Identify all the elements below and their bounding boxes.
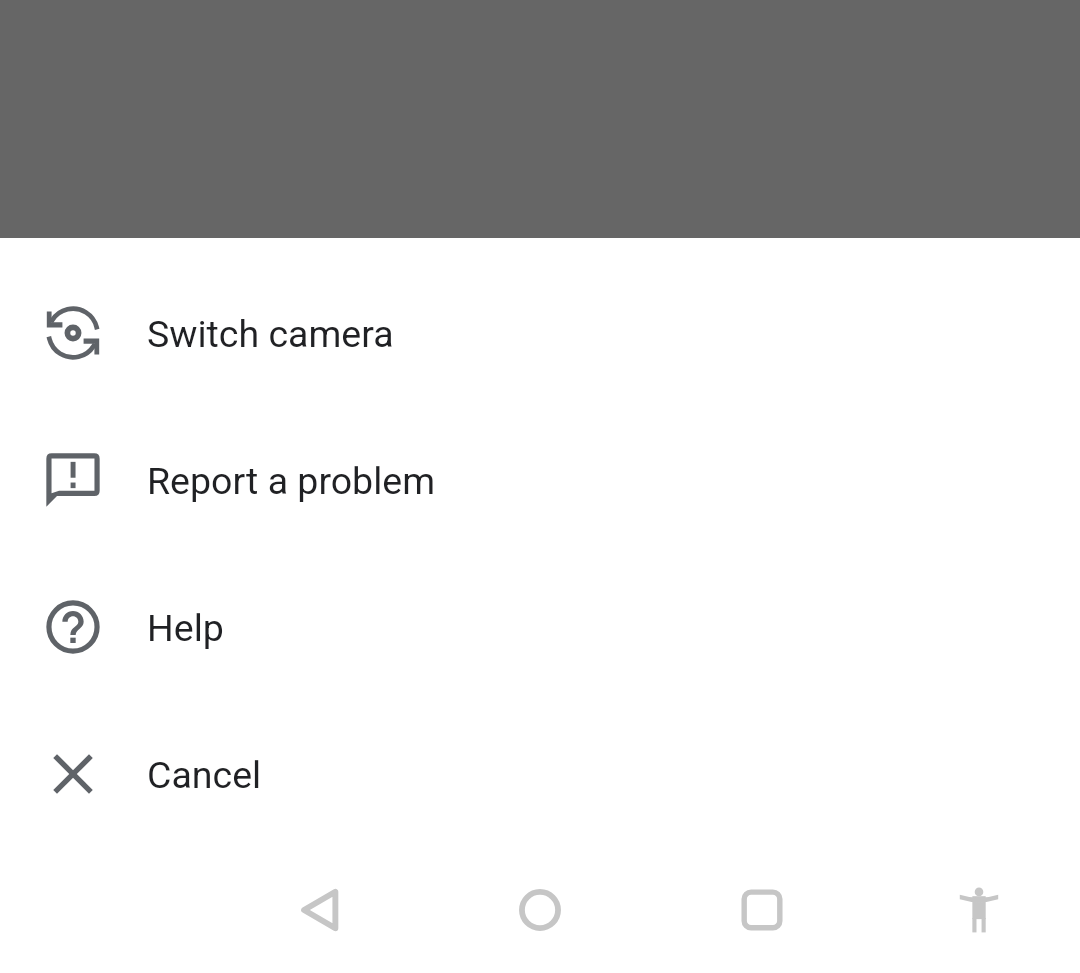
button[interactable]: Back <box>264 855 374 965</box>
button[interactable]: Home <box>485 855 595 965</box>
button[interactable]: Switch camera <box>0 259 1080 406</box>
staticText: Switch camera <box>147 312 394 356</box>
staticText: Help <box>147 606 224 650</box>
button[interactable]: Cancel <box>0 700 1080 847</box>
button[interactable]: Recent apps <box>707 855 817 965</box>
button[interactable]: Help <box>0 553 1080 700</box>
staticText: Report a problem <box>147 459 436 503</box>
button[interactable]: Report a problem <box>0 406 1080 553</box>
staticText: Cancel <box>147 753 262 797</box>
button[interactable]: Accessibility <box>924 855 1034 965</box>
